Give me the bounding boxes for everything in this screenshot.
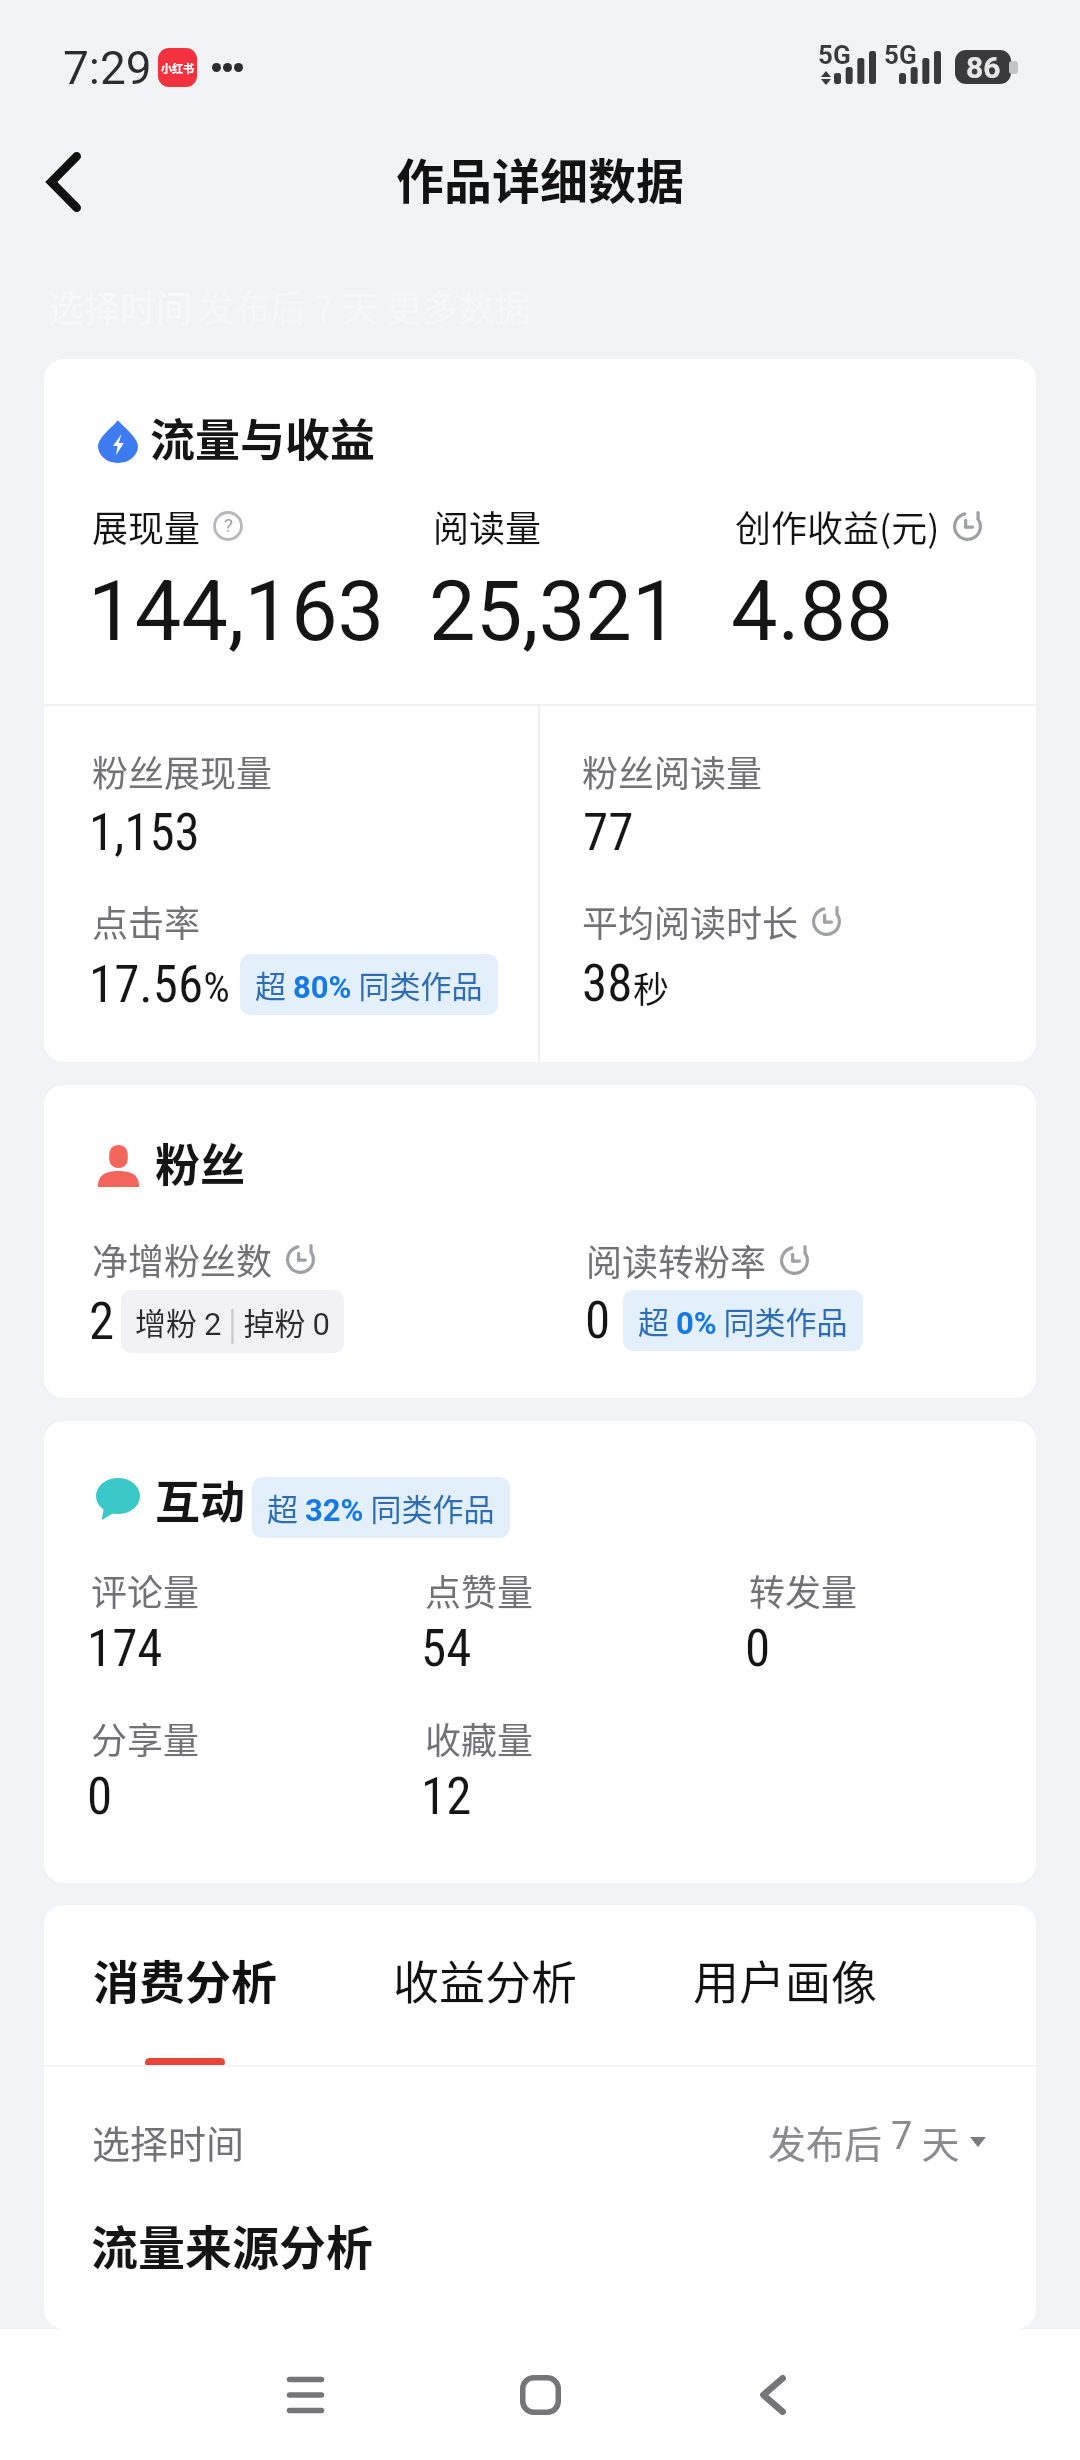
staticText: 互动 xyxy=(155,1467,246,1532)
staticText: 38 xyxy=(582,954,633,1014)
staticText: 阅读转粉率 xyxy=(586,1234,767,1286)
button[interactable]: Home xyxy=(450,2329,630,2460)
staticText: 用户画像 xyxy=(693,1946,877,2013)
button[interactable]: 消费分析 xyxy=(75,1905,295,2065)
staticText: 消费分析 xyxy=(93,1946,277,2013)
staticText: 点击率 xyxy=(92,895,201,947)
staticText: 超 80% 同类作品 xyxy=(255,962,483,1007)
staticText: 12 xyxy=(421,1767,472,1827)
staticText: 4.88 xyxy=(731,563,893,660)
staticText: 25,321 xyxy=(429,563,679,660)
staticText: ? xyxy=(224,514,233,536)
staticText: 超 0% 同类作品 xyxy=(638,1298,848,1343)
button[interactable]: 收益分析 xyxy=(375,1905,595,2065)
staticText: 17.56% xyxy=(89,955,230,1015)
staticText: 144,163 xyxy=(88,563,385,660)
staticText: 流量与收益 xyxy=(150,405,376,470)
button[interactable]: Back xyxy=(18,136,110,228)
staticText: 86 xyxy=(966,50,1001,84)
staticText: 净增粉丝数 xyxy=(92,1233,273,1285)
staticText: 2 xyxy=(89,1292,115,1352)
staticText: 5G xyxy=(818,40,851,70)
staticText: 0 xyxy=(585,1291,611,1351)
staticText: 1,153 xyxy=(89,803,200,863)
staticText: 超 32% 同类作品 xyxy=(267,1485,495,1530)
button[interactable]: 用户画像 xyxy=(675,1905,895,2065)
staticText: 点赞量 xyxy=(425,1564,534,1616)
staticText: 作品详细数据 xyxy=(396,143,685,213)
staticText: 粉丝阅读量 xyxy=(582,745,763,797)
staticText: 收藏量 xyxy=(425,1712,534,1764)
staticText: 77 xyxy=(583,803,634,863)
staticText: 选择时间 xyxy=(92,2114,245,2169)
staticText: 小红书 xyxy=(161,60,194,76)
button[interactable]: Back xyxy=(683,2329,863,2460)
staticText: 平均阅读时长 xyxy=(582,895,799,947)
staticText: 流量来源分析 xyxy=(91,2210,373,2278)
staticText: 54 xyxy=(421,1619,472,1679)
staticText: 粉丝 xyxy=(155,1130,246,1195)
staticText: 秒 xyxy=(633,961,670,1013)
staticText: 阅读量 xyxy=(433,500,542,552)
staticText: 展现量 xyxy=(92,500,201,552)
staticText: 创作收益(元) xyxy=(735,500,940,552)
staticText: 5G xyxy=(884,40,917,70)
staticText: 转发量 xyxy=(749,1564,858,1616)
staticText: 收益分析 xyxy=(393,1946,577,2013)
button[interactable]: Recent apps xyxy=(215,2329,395,2460)
staticText: 粉丝展现量 xyxy=(92,745,273,797)
staticText: 0 xyxy=(745,1619,771,1679)
staticText: 7 xyxy=(891,2114,913,2159)
staticText: 174 xyxy=(87,1619,163,1679)
staticText: 天 xyxy=(913,2114,960,2169)
staticText: 7:29 xyxy=(63,41,152,95)
staticText: 发布后 xyxy=(768,2114,891,2169)
staticText: 增粉 2 | 掉粉 0 xyxy=(135,1299,330,1344)
staticText: 评论量 xyxy=(91,1564,200,1616)
staticText: 分享量 xyxy=(91,1712,200,1764)
staticText: 0 xyxy=(87,1767,113,1827)
